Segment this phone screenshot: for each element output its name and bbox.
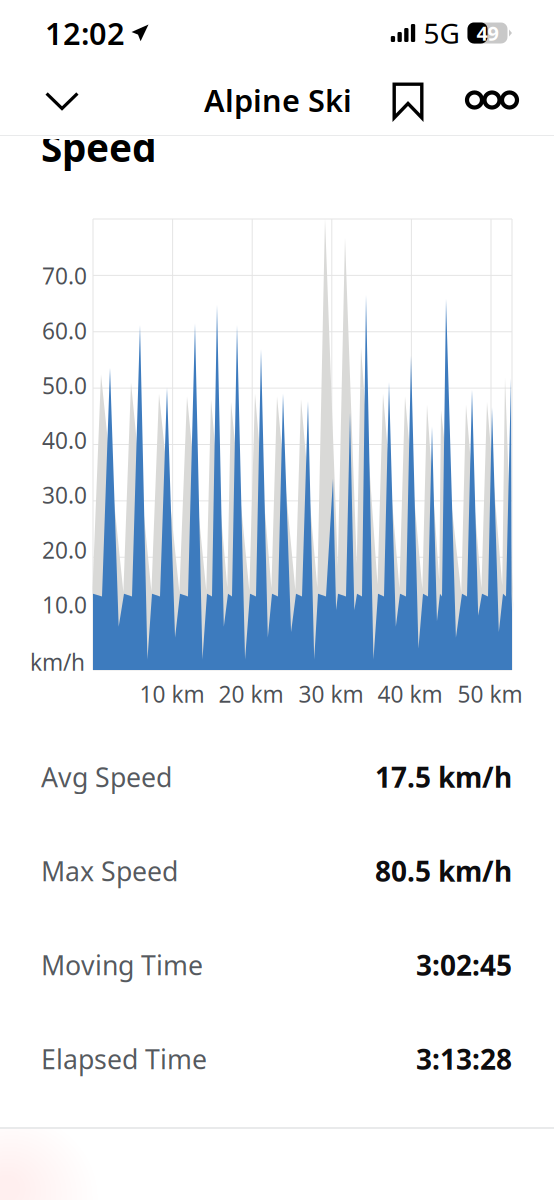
- button[interactable]: More options: [461, 73, 523, 127]
- staticText: 17.5 km/h: [375, 758, 512, 796]
- staticText: Alpine Ski: [204, 80, 352, 120]
- staticText: Avg Speed: [41, 759, 172, 795]
- staticText: 20.0: [42, 535, 87, 565]
- staticText: 5G: [423, 14, 459, 52]
- button[interactable]: Elapsed Time: [0, 1012, 554, 1106]
- button[interactable]: Moving Time: [0, 918, 554, 1012]
- staticText: Max Speed: [41, 853, 178, 889]
- staticText: 30.0: [42, 480, 87, 510]
- staticText: Elapsed Time: [41, 1041, 207, 1077]
- staticText: 20 km: [218, 679, 283, 709]
- button[interactable]: Bookmark: [379, 74, 437, 128]
- staticText: 60.0: [42, 316, 87, 346]
- staticText: 12:02: [45, 13, 125, 53]
- button[interactable]: Avg Speed: [0, 730, 554, 824]
- staticText: 30 km: [298, 679, 363, 709]
- staticText: 49: [476, 20, 498, 46]
- staticText: 70.0: [42, 261, 87, 291]
- staticText: Moving Time: [41, 947, 203, 983]
- staticText: 40.0: [42, 425, 87, 455]
- staticText: 10 km: [139, 679, 204, 709]
- staticText: 40 km: [377, 679, 442, 709]
- button[interactable]: Max Speed: [0, 824, 554, 918]
- staticText: Speed: [41, 121, 156, 173]
- staticText: 10.0: [42, 590, 87, 620]
- staticText: km/h: [30, 647, 85, 677]
- staticText: 3:13:28: [416, 1040, 512, 1078]
- staticText: 80.5 km/h: [375, 852, 512, 890]
- staticText: 50 km: [457, 679, 522, 709]
- staticText: 3:02:45: [416, 946, 512, 984]
- button[interactable]: Collapse: [31, 74, 93, 128]
- staticText: 50.0: [42, 370, 87, 400]
